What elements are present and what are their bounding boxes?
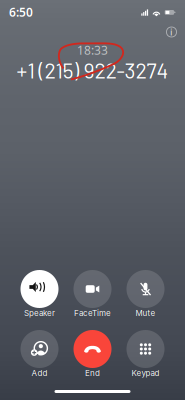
button[interactable]: Keypad <box>118 330 172 386</box>
staticText: Mute <box>135 308 155 318</box>
button[interactable]: Add <box>12 330 66 386</box>
staticText: FaceTime <box>74 308 111 318</box>
staticText: +1 (215) 922-3274 <box>16 57 168 83</box>
button[interactable]: Mute <box>118 270 172 326</box>
button[interactable]: FaceTime <box>65 270 119 326</box>
button[interactable]: Speaker <box>12 270 66 326</box>
button[interactable]: End <box>65 330 119 386</box>
staticText: End <box>85 368 100 378</box>
staticText: 18:33 <box>77 42 108 58</box>
button[interactable]: Call info <box>161 22 181 42</box>
staticText: Add <box>31 368 47 378</box>
staticText: Speaker <box>24 308 55 318</box>
staticText: 6:50 <box>9 4 33 20</box>
staticText: i <box>170 26 173 38</box>
staticText: Keypad <box>131 368 159 378</box>
